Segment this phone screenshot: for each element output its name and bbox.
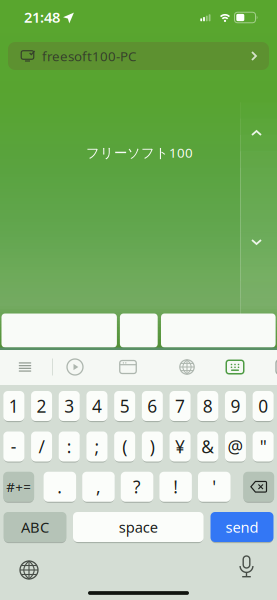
button[interactable]: " xyxy=(253,431,274,461)
button[interactable]: #+= xyxy=(3,472,34,502)
staticText: " xyxy=(260,435,267,458)
staticText: ) xyxy=(150,435,155,458)
button[interactable]: ( xyxy=(114,431,135,461)
button[interactable] xyxy=(238,555,255,581)
button[interactable]: . xyxy=(44,472,76,502)
staticText: , xyxy=(96,475,101,498)
staticText: 4 xyxy=(92,394,102,417)
staticText: . xyxy=(57,475,62,498)
staticText: : xyxy=(67,435,72,458)
button[interactable]: ' xyxy=(198,472,230,502)
button[interactable] xyxy=(1,313,117,347)
button[interactable]: ; xyxy=(86,431,107,461)
button[interactable]: ! xyxy=(159,472,192,502)
staticText: 0 xyxy=(258,394,268,417)
staticText: ' xyxy=(212,475,216,498)
button[interactable]: , xyxy=(82,472,115,502)
staticText: 7 xyxy=(175,394,185,417)
button[interactable]: 8 xyxy=(197,391,218,421)
button[interactable]: ? xyxy=(121,472,153,502)
button[interactable]: : xyxy=(59,431,80,461)
staticText: 1 xyxy=(9,394,19,417)
button[interactable]: 2 xyxy=(31,391,52,421)
staticText: フリーソフト100 xyxy=(86,144,193,161)
staticText: ¥ xyxy=(175,435,185,458)
staticText: 21:48 xyxy=(24,7,60,27)
button[interactable] xyxy=(119,360,137,374)
button[interactable]: 7 xyxy=(169,391,190,421)
staticText: & xyxy=(201,435,214,458)
staticText: #+= xyxy=(6,478,31,496)
button[interactable] xyxy=(179,359,195,375)
staticText: - xyxy=(11,435,17,458)
button[interactable]: ) xyxy=(142,431,163,461)
staticText: 3 xyxy=(64,394,74,417)
button[interactable]: @ xyxy=(225,431,246,461)
button[interactable]: 5 xyxy=(114,391,135,421)
button[interactable]: 4 xyxy=(86,391,107,421)
button[interactable]: space xyxy=(73,512,203,542)
button[interactable] xyxy=(120,313,158,347)
button[interactable] xyxy=(161,313,276,347)
staticText: 9 xyxy=(230,394,240,417)
staticText: freesoft100-PC xyxy=(42,47,136,65)
staticText: ; xyxy=(94,435,99,458)
button[interactable]: 0 xyxy=(253,391,274,421)
button[interactable]: & xyxy=(197,431,218,461)
button[interactable] xyxy=(225,359,244,374)
button[interactable] xyxy=(66,358,83,375)
button[interactable]: 3 xyxy=(59,391,80,421)
button[interactable] xyxy=(251,239,262,245)
staticText: ( xyxy=(122,435,127,458)
button[interactable] xyxy=(18,361,31,372)
button[interactable]: 1 xyxy=(3,391,24,421)
staticText: 2 xyxy=(36,394,46,417)
button[interactable]: ABC xyxy=(3,512,66,542)
button[interactable]: 9 xyxy=(225,391,246,421)
button[interactable]: ¥ xyxy=(169,431,190,461)
staticText: @ xyxy=(227,435,243,458)
staticText: 8 xyxy=(203,394,213,417)
staticText: ? xyxy=(133,475,141,498)
staticText: space xyxy=(119,517,158,537)
button[interactable] xyxy=(251,130,262,136)
staticText: ! xyxy=(173,475,178,498)
button[interactable] xyxy=(243,472,274,502)
staticText: 6 xyxy=(147,394,157,417)
button[interactable]: / xyxy=(31,431,52,461)
button[interactable]: freesoft100-PC xyxy=(8,42,269,70)
button[interactable] xyxy=(0,73,240,311)
button[interactable]: 6 xyxy=(142,391,163,421)
button[interactable] xyxy=(19,560,39,580)
staticText: / xyxy=(38,435,44,458)
staticText: ABC xyxy=(21,517,49,537)
staticText: send xyxy=(225,517,258,537)
button[interactable]: - xyxy=(3,431,24,461)
staticText: 5 xyxy=(120,394,130,417)
button[interactable]: send xyxy=(210,512,273,542)
